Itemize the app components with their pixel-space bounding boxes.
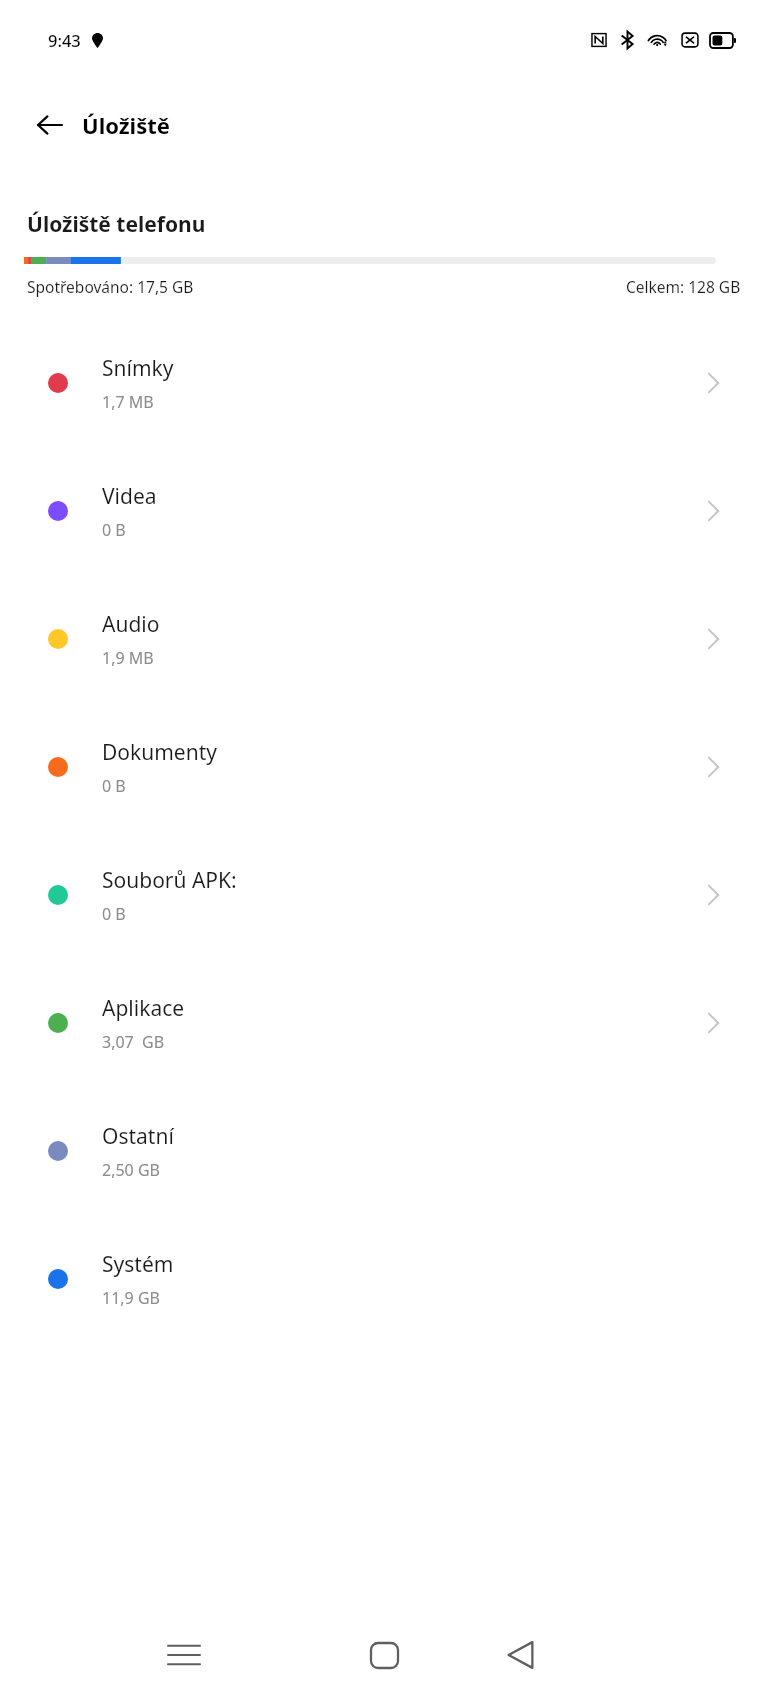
button[interactable]: Videa — [0, 447, 768, 575]
staticText: Videa — [102, 482, 157, 511]
staticText: Audio — [102, 610, 160, 639]
staticText: Celkem: 128 GB — [626, 276, 741, 297]
button[interactable]: Recent apps — [152, 1623, 216, 1687]
button[interactable]: Audio — [0, 575, 768, 703]
staticText: 0 B — [102, 519, 126, 541]
button[interactable]: Home — [352, 1623, 416, 1687]
button[interactable]: Dokumenty — [0, 703, 768, 831]
button[interactable]: Snímky — [0, 319, 768, 447]
staticText: 2,50 GB — [102, 1159, 160, 1181]
button[interactable]: Ostatní — [0, 1087, 768, 1215]
staticText: Úložiště — [82, 110, 170, 140]
staticText: Souborů APK: — [102, 866, 237, 895]
staticText: 1,7 MB — [102, 391, 154, 413]
staticText: 9:43 — [48, 29, 81, 51]
staticText: 3,07 GB — [102, 1031, 165, 1053]
staticText: 11,9 GB — [102, 1287, 160, 1309]
button[interactable]: Back — [22, 97, 78, 153]
button[interactable]: Systém — [0, 1215, 768, 1343]
staticText: Dokumenty — [102, 738, 217, 767]
staticText: 1,9 MB — [102, 647, 154, 669]
staticText: 0 B — [102, 903, 126, 925]
staticText: Snímky — [102, 354, 174, 383]
staticText: Aplikace — [102, 994, 185, 1023]
staticText: 0 B — [102, 775, 126, 797]
staticText: Spotřebováno: 17,5 GB — [27, 276, 194, 297]
button[interactable]: Back — [488, 1623, 552, 1687]
staticText: Ostatní — [102, 1122, 174, 1151]
staticText: Systém — [102, 1250, 174, 1279]
button[interactable]: Aplikace — [0, 959, 768, 1087]
staticText: Úložiště telefonu — [27, 210, 206, 239]
button[interactable]: Souborů APK: — [0, 831, 768, 959]
